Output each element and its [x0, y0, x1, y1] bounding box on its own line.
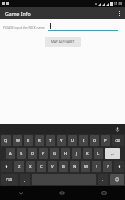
staticText: R — [38, 138, 41, 144]
staticText: B — [62, 164, 65, 170]
staticText: X — [29, 164, 32, 170]
staticText: M — [84, 164, 88, 170]
button[interactable]: Back — [0, 186, 41, 200]
button[interactable]: F — [39, 148, 48, 159]
button[interactable]: Emoji — [110, 174, 124, 185]
staticText: , — [24, 177, 26, 183]
button[interactable]: Home — [41, 186, 83, 200]
staticText: A — [9, 151, 12, 157]
staticText: F — [42, 151, 45, 157]
staticText: Y — [60, 138, 63, 144]
staticText: H — [64, 151, 68, 157]
button[interactable]: S — [17, 148, 26, 159]
button[interactable]: R — [35, 135, 44, 146]
button[interactable]: Shift — [114, 161, 124, 172]
staticText: ?123 — [6, 178, 13, 182]
staticText: C — [40, 164, 43, 170]
staticText: U — [71, 138, 75, 144]
button[interactable]: ! — [92, 161, 101, 172]
staticText: G — [53, 151, 57, 157]
button[interactable]: C — [37, 161, 46, 172]
staticText: ! — [96, 164, 98, 170]
button[interactable]: More options — [113, 7, 125, 19]
button[interactable]: N — [70, 161, 79, 172]
button[interactable]: D — [28, 148, 37, 159]
staticText: 11:10 — [114, 2, 123, 6]
button[interactable]: T — [46, 135, 55, 146]
staticText: Q — [4, 138, 8, 144]
staticText: N — [73, 164, 77, 170]
staticText: ↵ — [111, 152, 115, 156]
staticText: PLEASE input the NICK name — [3, 26, 45, 30]
staticText: K — [86, 151, 89, 157]
button[interactable]: J — [72, 148, 81, 159]
button[interactable]: O — [90, 135, 99, 146]
button[interactable]: E — [24, 135, 33, 146]
staticText: O — [93, 138, 97, 144]
button[interactable] — [48, 22, 118, 31]
button[interactable]: Period — [98, 174, 108, 185]
button[interactable]: Voice input — [113, 125, 122, 134]
staticText: Game Info — [5, 10, 31, 17]
staticText: T — [49, 138, 52, 144]
staticText: ? — [107, 164, 109, 170]
staticText: . — [102, 177, 104, 183]
button[interactable]: M — [81, 161, 90, 172]
button[interactable]: G — [50, 148, 59, 159]
button[interactable]: A — [6, 148, 15, 159]
staticText: ⬆ — [5, 165, 8, 169]
staticText: S — [20, 151, 23, 157]
button[interactable]: Q — [1, 135, 11, 146]
button[interactable]: I — [79, 135, 88, 146]
staticText: V — [51, 164, 54, 170]
button[interactable]: U — [68, 135, 77, 146]
button[interactable]: ? — [103, 161, 112, 172]
staticText: I — [83, 138, 85, 144]
button[interactable]: B — [59, 161, 68, 172]
button[interactable]: X — [26, 161, 35, 172]
staticText: E — [27, 138, 30, 144]
staticText: D — [31, 151, 35, 157]
button[interactable]: H — [61, 148, 70, 159]
button[interactable]: Z — [14, 161, 24, 172]
button[interactable]: V — [48, 161, 57, 172]
staticText: P — [104, 138, 107, 144]
staticText: MAP ALPHABET — [51, 40, 75, 44]
staticText: J — [76, 151, 78, 157]
button[interactable]: Enter — [105, 148, 120, 159]
button[interactable]: Comma — [20, 174, 30, 185]
button[interactable]: Symbols — [1, 174, 18, 185]
staticText: ⬆ — [118, 165, 121, 169]
button[interactable]: K — [83, 148, 92, 159]
button[interactable]: L — [94, 148, 103, 159]
button[interactable]: Y — [57, 135, 66, 146]
staticText: L — [97, 151, 100, 157]
button[interactable]: Backspace — [112, 135, 124, 146]
staticText: ☺ — [115, 177, 120, 182]
staticText: Z — [18, 164, 21, 170]
button[interactable]: Recents — [83, 186, 125, 200]
staticText: ⌫ — [115, 139, 121, 143]
staticText: W — [16, 138, 20, 144]
button[interactable]: W — [13, 135, 22, 146]
button[interactable]: Shift — [1, 161, 12, 172]
button[interactable]: P — [101, 135, 110, 146]
button[interactable]: MAP ALPHABET — [45, 37, 81, 47]
